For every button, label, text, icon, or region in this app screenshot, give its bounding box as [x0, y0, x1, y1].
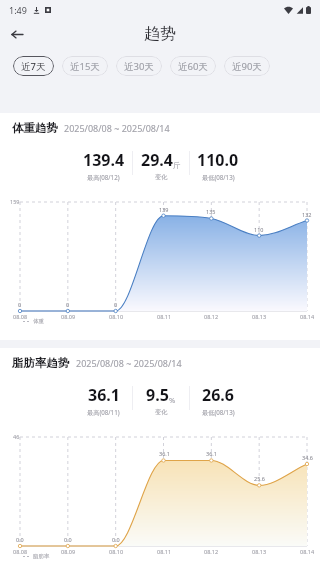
- staticText: 0: [114, 301, 118, 308]
- staticText: 近90天: [232, 60, 262, 73]
- staticText: 斤: [173, 161, 181, 170]
- staticText: 脂肪率趋势: [12, 356, 70, 370]
- staticText: 110.0: [197, 149, 239, 171]
- staticText: 趋势: [144, 24, 176, 44]
- button[interactable]: Back: [5, 22, 29, 46]
- staticText: 08.11: [157, 313, 172, 320]
- staticText: 0.0: [112, 536, 120, 543]
- staticText: %: [169, 395, 176, 405]
- button[interactable]: 近90天: [224, 56, 270, 76]
- staticText: 08.13: [252, 548, 267, 555]
- staticText: 34.6: [302, 454, 313, 461]
- staticText: 近30天: [124, 60, 154, 73]
- staticText: 08.10: [109, 548, 124, 555]
- staticText: 36.1: [88, 384, 120, 406]
- staticText: 46: [13, 433, 20, 440]
- staticText: 0: [18, 301, 22, 308]
- staticText: 08.08: [13, 313, 28, 320]
- staticText: 36.1: [206, 450, 217, 457]
- staticText: 08.09: [61, 548, 76, 555]
- staticText: 08.13: [252, 313, 267, 320]
- staticText: 最高(08/11): [87, 408, 120, 416]
- staticText: 159: [10, 198, 20, 205]
- staticText: 139: [159, 206, 169, 213]
- staticText: 最低(08/13): [202, 173, 235, 181]
- staticText: 08.08: [13, 548, 28, 555]
- staticText: 变化: [155, 173, 168, 181]
- staticText: 变化: [155, 408, 168, 416]
- button[interactable]: 近30天: [116, 56, 162, 76]
- staticText: 08.12: [204, 313, 219, 320]
- staticText: 9.5: [146, 384, 169, 406]
- staticText: 36.1: [159, 450, 170, 457]
- staticText: 29.4: [141, 149, 173, 171]
- button[interactable]: 近7天: [13, 56, 54, 76]
- staticText: 08.11: [157, 548, 172, 555]
- staticText: 最高(08/12): [87, 173, 120, 181]
- button[interactable]: 近60天: [170, 56, 216, 76]
- staticText: 08.14: [300, 548, 315, 555]
- staticText: 0: [66, 301, 70, 308]
- staticText: 135: [206, 208, 216, 215]
- staticText: 08.09: [61, 313, 76, 320]
- staticText: 132: [302, 211, 312, 218]
- staticText: 近7天: [21, 60, 46, 73]
- staticText: 近60天: [178, 60, 208, 73]
- staticText: 0.0: [64, 536, 72, 543]
- staticText: 25.6: [254, 475, 265, 482]
- staticText: 110: [254, 226, 264, 233]
- staticText: 1:49: [9, 4, 27, 16]
- staticText: 最低(08/13): [202, 408, 235, 416]
- staticText: 脂肪率: [33, 553, 50, 560]
- staticText: 08.14: [300, 313, 315, 320]
- staticText: 08.10: [109, 313, 124, 320]
- staticText: 26.6: [202, 384, 234, 406]
- staticText: 2025/08/08 ~ 2025/08/14: [64, 122, 170, 134]
- staticText: 近15天: [70, 60, 100, 73]
- button[interactable]: 近15天: [62, 56, 108, 76]
- staticText: 体重趋势: [12, 121, 58, 135]
- staticText: 0.0: [16, 536, 24, 543]
- staticText: 08.12: [204, 548, 219, 555]
- staticText: 2025/08/08 ~ 2025/08/14: [76, 357, 182, 369]
- staticText: 体重: [33, 318, 44, 325]
- staticText: 139.4: [83, 149, 125, 171]
